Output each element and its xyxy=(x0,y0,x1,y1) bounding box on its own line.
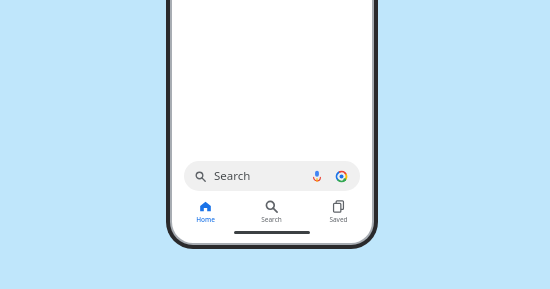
button[interactable]: Voice search xyxy=(308,167,326,185)
staticText: Saved xyxy=(329,215,348,224)
staticText: Search xyxy=(214,168,251,184)
button[interactable]: Saved xyxy=(305,200,372,224)
staticText: Search xyxy=(261,215,282,224)
button[interactable]: Search xyxy=(238,200,305,224)
button[interactable]: Google Lens xyxy=(332,167,350,185)
button[interactable]: Search xyxy=(184,161,360,191)
button[interactable]: Home xyxy=(172,200,238,224)
staticText: Home xyxy=(196,215,215,224)
